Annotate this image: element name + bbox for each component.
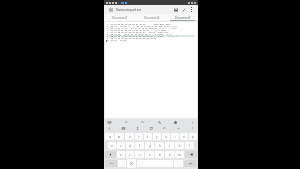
button[interactable]: e	[125, 133, 134, 140]
button[interactable]: y	[153, 133, 161, 140]
staticText: o	[183, 135, 185, 139]
staticText: ?123	[109, 162, 114, 165]
button[interactable]: Enter	[184, 160, 197, 167]
staticText: 1: 00 00 00 00 00 00 00 00 00 00 --- 000…	[107, 23, 171, 25]
button[interactable]: f	[135, 142, 144, 149]
staticText: r	[138, 135, 140, 139]
staticText: e	[129, 135, 131, 139]
staticText: y	[156, 135, 158, 139]
button[interactable]: Keyboard tool	[121, 126, 126, 131]
button[interactable]: Document1	[104, 14, 136, 21]
button[interactable]: x	[126, 151, 134, 158]
button[interactable]: Keyboard tool	[140, 120, 145, 125]
button[interactable]: l	[185, 142, 194, 149]
staticText: 9: 00 00 · 00 00	[107, 39, 127, 41]
button[interactable]: Document3	[167, 14, 198, 21]
button[interactable]: Keyboard tool	[176, 126, 181, 131]
staticText: w	[118, 135, 121, 139]
button[interactable]: j	[165, 142, 174, 149]
staticText: Document2	[144, 16, 160, 20]
button[interactable]: v	[145, 151, 154, 158]
button[interactable]: Keyboard tool	[173, 120, 178, 125]
button[interactable]: d	[126, 142, 134, 149]
button[interactable]: c	[135, 151, 144, 158]
button[interactable]: Keyboard tool	[124, 120, 129, 125]
staticText: m	[178, 153, 181, 157]
button[interactable]: Save	[172, 6, 180, 14]
staticText: a	[111, 144, 113, 148]
staticText: k	[179, 144, 181, 148]
staticText: 3: 00 21 00 1f 10 · 0b 01 00 00 00 0a00(…	[107, 27, 177, 29]
staticText: 4: 05 0a 00 0b 00 00 00 00 00 00 00 · 0 …	[107, 29, 166, 31]
staticText: Document3	[175, 16, 191, 20]
staticText: t	[147, 135, 149, 139]
staticText: Document1	[112, 16, 128, 20]
button[interactable]: w	[115, 133, 124, 140]
staticText: 2: 00 01 · 2d 00 13 · 0 100 2d 00 00 00 …	[107, 25, 177, 27]
button[interactable]: k	[175, 142, 184, 149]
button[interactable]: n	[165, 151, 174, 158]
button[interactable]: b	[155, 151, 164, 158]
button[interactable]: Shift	[105, 151, 116, 158]
staticText: u	[165, 135, 167, 139]
staticText: f	[139, 144, 140, 148]
staticText: ,	[122, 162, 123, 166]
button[interactable]: a	[108, 142, 116, 149]
button[interactable]: Keyboard tool	[157, 120, 162, 125]
staticText: 6: 00 01 00 · 00 00 01 00 00 01 00 1c · …	[107, 33, 175, 35]
staticText: i	[175, 135, 176, 139]
staticText: s	[120, 144, 122, 148]
staticText: 8: 00 00 00 00 00 00 00 00 00 00 00 00 0…	[107, 37, 157, 39]
button[interactable]: Backspace	[185, 151, 197, 158]
button[interactable]: Emoji	[127, 159, 136, 168]
staticText: 7: 00 00 00 01 00 00 00 01 00 00 00 00 1…	[107, 35, 177, 37]
staticText: b	[159, 153, 161, 157]
staticText: q	[109, 135, 111, 139]
staticText: p	[192, 135, 194, 139]
staticText: c	[139, 153, 141, 157]
staticText: l	[189, 144, 190, 148]
button[interactable]: u	[162, 133, 170, 140]
button[interactable]: m	[175, 151, 184, 158]
button[interactable]: Keyboard tool	[107, 126, 112, 131]
staticText: n	[169, 153, 171, 157]
button[interactable]: z	[117, 151, 125, 158]
button[interactable]: Edit	[180, 6, 188, 14]
button[interactable]: Keyboard tool	[162, 126, 167, 131]
staticText: z	[120, 153, 122, 157]
staticText: h	[159, 144, 161, 148]
staticText: j	[169, 144, 170, 148]
staticText: g	[149, 144, 151, 148]
staticText: Datanotepad.txt	[116, 8, 142, 12]
button[interactable]: Navigation menu	[107, 6, 114, 13]
button[interactable]: More options	[188, 6, 195, 13]
button[interactable]: h	[155, 142, 164, 149]
button[interactable]: s	[117, 142, 125, 149]
button[interactable]: Keyboard tool	[107, 120, 112, 125]
button[interactable]: g	[145, 142, 154, 149]
button[interactable]: Keyboard tool	[149, 126, 154, 131]
staticText: v	[149, 153, 151, 157]
button[interactable]: q	[105, 133, 114, 140]
button[interactable]: p	[189, 133, 197, 140]
button[interactable]: ?123	[105, 160, 117, 167]
button[interactable]: r	[135, 133, 143, 140]
button[interactable]: o	[180, 133, 188, 140]
button[interactable]: t	[144, 133, 152, 140]
button[interactable]: Keyboard tool	[190, 120, 195, 125]
button[interactable]: Keyboard tool	[190, 126, 195, 131]
staticText: d	[129, 144, 131, 148]
staticText: 5: 01 01 00 00 00 00 00 00 00 01 · 00 00…	[107, 31, 169, 33]
staticText: .	[178, 162, 179, 166]
button[interactable]: Keyboard tool	[135, 126, 140, 131]
button[interactable]: i	[171, 133, 179, 140]
button[interactable]: 1: 00 00 00 00 00 00 00 00 00 00 --- 000…	[105, 22, 197, 118]
button[interactable]: ,	[118, 160, 126, 167]
button[interactable]: Document2	[136, 14, 167, 21]
staticText: x	[129, 153, 131, 157]
